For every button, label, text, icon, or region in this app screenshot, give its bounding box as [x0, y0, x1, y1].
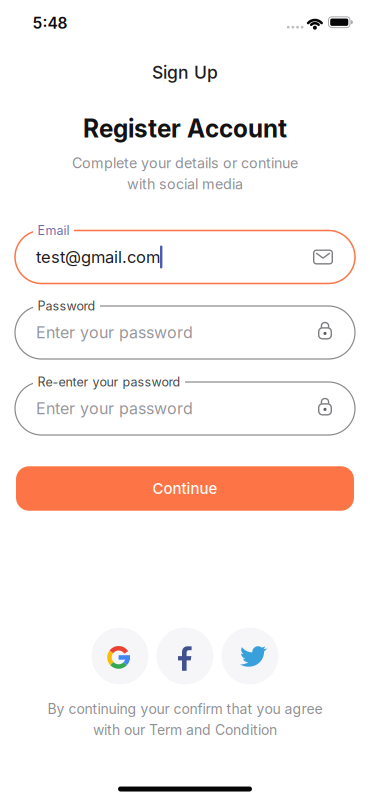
staticText: Complete your details or continue	[72, 155, 298, 171]
button[interactable]: Enter your password	[15, 306, 355, 359]
button[interactable]: Continue with Facebook	[156, 627, 213, 684]
button[interactable]: Continue with Google	[91, 627, 148, 684]
staticText: Register Account	[83, 114, 287, 143]
staticText: Password	[37, 299, 95, 313]
button[interactable]: Enter your password	[15, 382, 355, 435]
staticText: Email	[37, 223, 69, 238]
staticText: test@gmail.com	[36, 247, 160, 267]
staticText: By continuing your confirm that you agre…	[47, 701, 322, 717]
staticText: Enter your password	[36, 323, 193, 342]
staticText: Re-enter your password	[37, 375, 180, 389]
staticText: Continue	[152, 480, 217, 497]
button[interactable]: test@gmail.com	[15, 230, 355, 283]
staticText: 5:48	[32, 14, 67, 32]
button[interactable]: Continue	[16, 466, 354, 511]
staticText: with our Term and Condition	[93, 722, 277, 738]
staticText: Sign Up	[152, 62, 218, 83]
staticText: Enter your password	[36, 399, 193, 418]
button[interactable]: Continue with Twitter	[221, 627, 278, 684]
staticText: with social media	[127, 176, 243, 192]
